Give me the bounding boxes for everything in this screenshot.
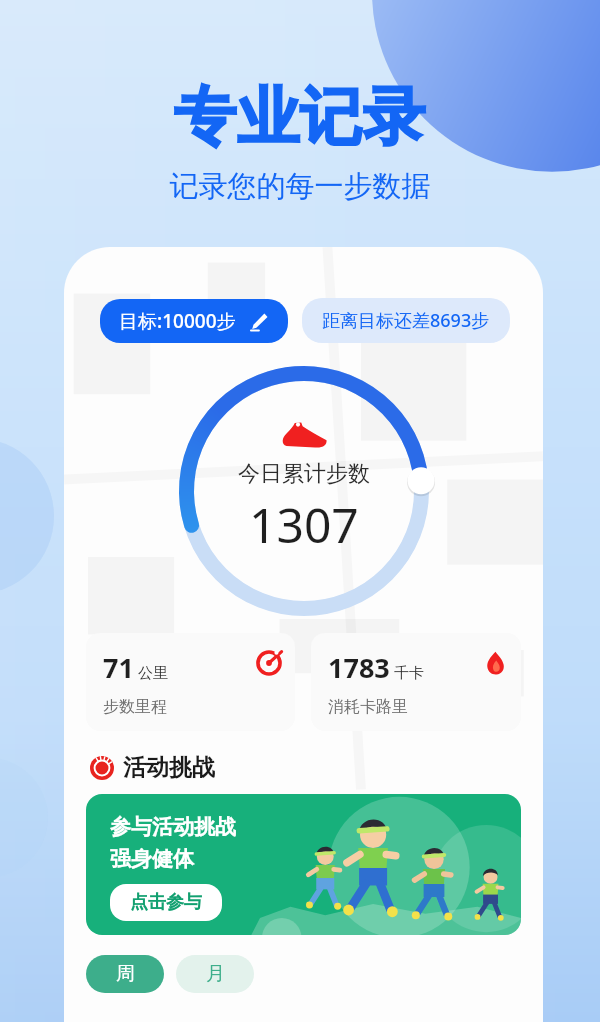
button[interactable]: 月 (176, 955, 254, 993)
staticText: 千卡 (394, 664, 424, 683)
staticText: 月 (206, 962, 225, 986)
button[interactable]: 目标:10000步 (100, 299, 288, 343)
staticText: 今日累计步数 (238, 460, 370, 488)
button[interactable]: 参与活动挑战 (86, 794, 521, 935)
staticText: 周 (116, 962, 135, 986)
staticText: 记录您的每一步数据 (0, 168, 600, 205)
button[interactable]: 距离目标还差8693步 (302, 298, 510, 343)
staticText: 步数里程 (103, 697, 167, 717)
button[interactable]: 周 (86, 955, 164, 993)
staticText: 1783 (328, 649, 390, 686)
staticText: 点击参与 (130, 891, 202, 914)
staticText: 强身健体 (110, 846, 194, 872)
staticText: 71 (103, 649, 134, 686)
staticText: 消耗卡路里 (328, 697, 408, 717)
staticText: 距离目标还差8693步 (322, 308, 490, 333)
button[interactable]: 点击参与 (110, 884, 222, 921)
staticText: 目标:10000步 (119, 308, 236, 334)
staticText: 参与活动挑战 (110, 814, 236, 840)
staticText: 1307 (249, 492, 359, 557)
button[interactable]: 71 (86, 633, 295, 731)
staticText: 公里 (138, 664, 168, 683)
staticText: 专业记录 (0, 78, 600, 156)
button[interactable]: 1783 (311, 633, 521, 731)
staticText: 活动挑战 (123, 753, 215, 782)
